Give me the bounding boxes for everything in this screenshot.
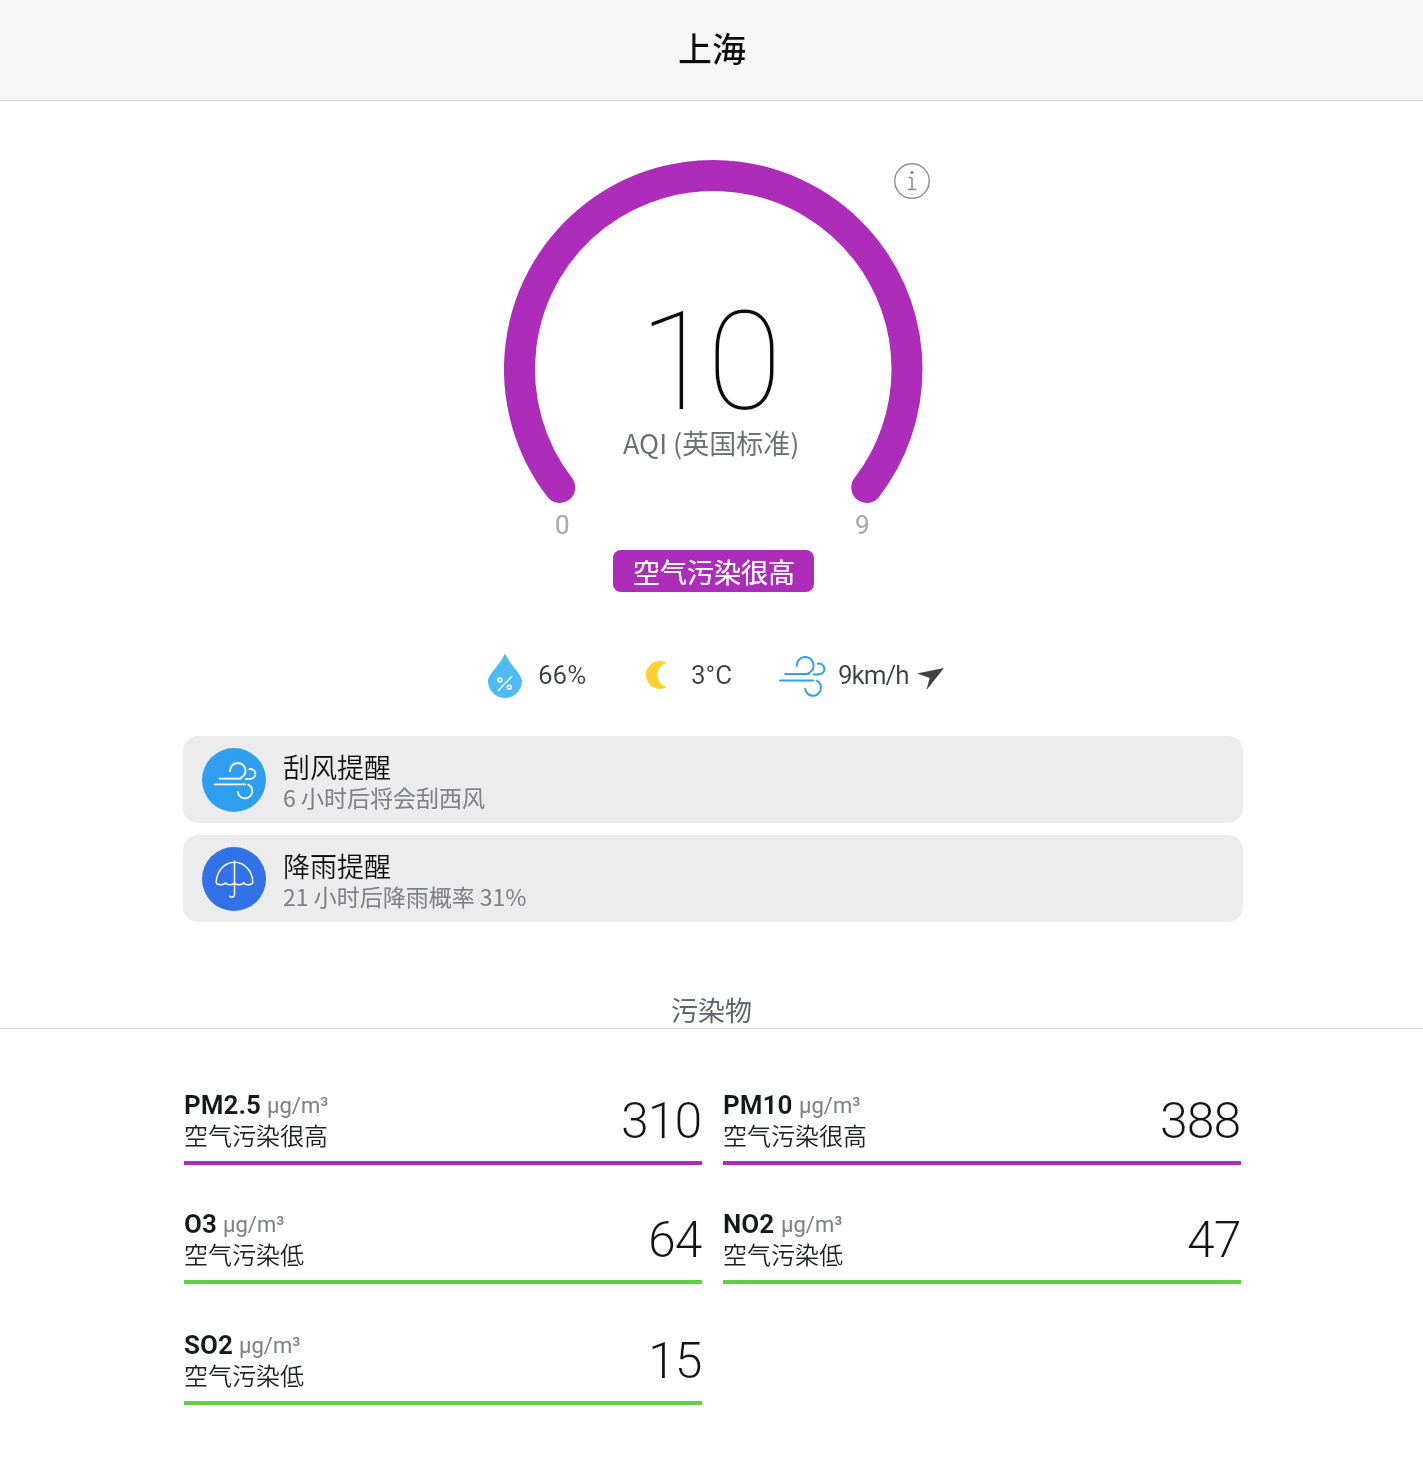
staticText: PM2.5 [184, 1090, 261, 1120]
staticText: 空气污染低 [723, 1236, 843, 1271]
staticText: 64 [648, 1211, 702, 1270]
staticText: PM10 [723, 1090, 793, 1120]
staticText: 21 小时后降雨概率 31% [283, 879, 527, 912]
staticText: 6 小时后将会刮西风 [283, 780, 485, 813]
staticText: 空气污染很高 [723, 1117, 867, 1152]
staticText: NO2 [723, 1209, 775, 1239]
button[interactable]: 降雨提醒 [183, 835, 1243, 922]
staticText: 刮风提醒 [283, 747, 391, 786]
button[interactable]: PM2.5 [184, 1087, 702, 1165]
button[interactable]: 空气污染很高 [613, 550, 814, 592]
staticText: 388 [1160, 1092, 1241, 1151]
button[interactable]: PM10 [723, 1087, 1241, 1165]
button[interactable]: 66% [482, 648, 597, 702]
staticText: 降雨提醒 [283, 846, 391, 885]
staticText: SO2 [184, 1330, 233, 1360]
staticText: 0 [555, 510, 570, 540]
button[interactable]: SO2 [184, 1327, 702, 1405]
button[interactable]: Info [890, 159, 934, 203]
button[interactable]: NO2 [723, 1206, 1241, 1284]
staticText: 空气污染低 [184, 1236, 304, 1271]
staticText: μg/m³ [781, 1212, 843, 1238]
staticText: 上海 [678, 23, 746, 72]
staticText: O3 [184, 1209, 217, 1239]
staticText: 9 [855, 510, 870, 540]
staticText: 空气污染很高 [184, 1117, 328, 1152]
staticText: μg/m³ [223, 1212, 285, 1238]
staticText: 47 [1187, 1211, 1241, 1270]
button[interactable]: O3 [184, 1206, 702, 1284]
staticText: 9km/h [838, 660, 909, 690]
staticText: AQI (英国标准) [623, 423, 800, 462]
staticText: μg/m³ [799, 1093, 861, 1119]
button[interactable]: 刮风提醒 [183, 736, 1243, 823]
staticText: 10 [639, 282, 775, 443]
button[interactable]: 3°C [641, 648, 739, 702]
staticText: 15 [648, 1332, 702, 1391]
staticText: 空气污染很高 [633, 552, 795, 591]
staticText: 污染物 [671, 990, 752, 1029]
staticText: μg/m³ [239, 1333, 301, 1359]
staticText: μg/m³ [267, 1093, 329, 1119]
staticText: 空气污染低 [184, 1357, 304, 1392]
staticText: 66% [538, 660, 587, 690]
staticText: 310 [621, 1092, 702, 1151]
button[interactable]: 9km/h [774, 648, 950, 702]
staticText: 3°C [691, 660, 733, 690]
